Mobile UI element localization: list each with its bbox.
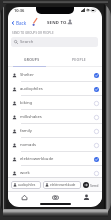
staticText: audiophiles xyxy=(18,183,36,187)
button[interactable]: elektrowerkbude xyxy=(8,152,102,166)
button[interactable]: Profile xyxy=(71,192,102,203)
staticText: Shelter xyxy=(20,72,94,78)
staticText: biking xyxy=(20,100,94,106)
staticText: Back xyxy=(16,20,27,26)
button[interactable]: Search xyxy=(11,37,98,47)
button[interactable]: elektrowerkbude xyxy=(43,181,81,189)
staticText: SEND TO… xyxy=(47,20,71,26)
staticText: PEOPLE xyxy=(72,57,86,62)
staticText: Send xyxy=(90,183,99,188)
staticText: elektrowerkbude xyxy=(50,183,76,187)
button[interactable]: PEOPLE xyxy=(55,52,102,66)
button[interactable]: work xyxy=(8,166,102,180)
button[interactable]: family xyxy=(8,124,102,138)
button[interactable]: Shelter xyxy=(8,68,102,82)
button[interactable]: Send xyxy=(83,182,99,188)
staticText: family xyxy=(20,128,94,134)
staticText: nomads xyxy=(20,142,94,148)
button[interactable]: Back xyxy=(8,18,30,27)
button[interactable]: Home xyxy=(8,192,40,203)
staticText: milkshakes xyxy=(20,114,94,120)
staticText: Search xyxy=(20,39,34,45)
staticText: elektrowerkbude xyxy=(20,156,94,162)
button[interactable]: New message xyxy=(29,15,40,26)
button[interactable]: audiophiles xyxy=(8,82,102,96)
staticText: audiophiles xyxy=(20,86,94,92)
staticText: 10:36 xyxy=(14,8,25,13)
button[interactable]: GROUPS xyxy=(8,52,55,66)
button[interactable]: audiophiles xyxy=(11,181,41,189)
button[interactable]: biking xyxy=(8,96,102,110)
button[interactable]: milkshakes xyxy=(8,110,102,124)
staticText: GROUPS xyxy=(24,57,40,62)
button[interactable]: Camera xyxy=(40,192,71,203)
staticText: work xyxy=(20,170,94,176)
button[interactable]: nomads xyxy=(8,138,102,152)
staticText: SEND TO GROUPS OR PEOPLE xyxy=(12,31,54,35)
